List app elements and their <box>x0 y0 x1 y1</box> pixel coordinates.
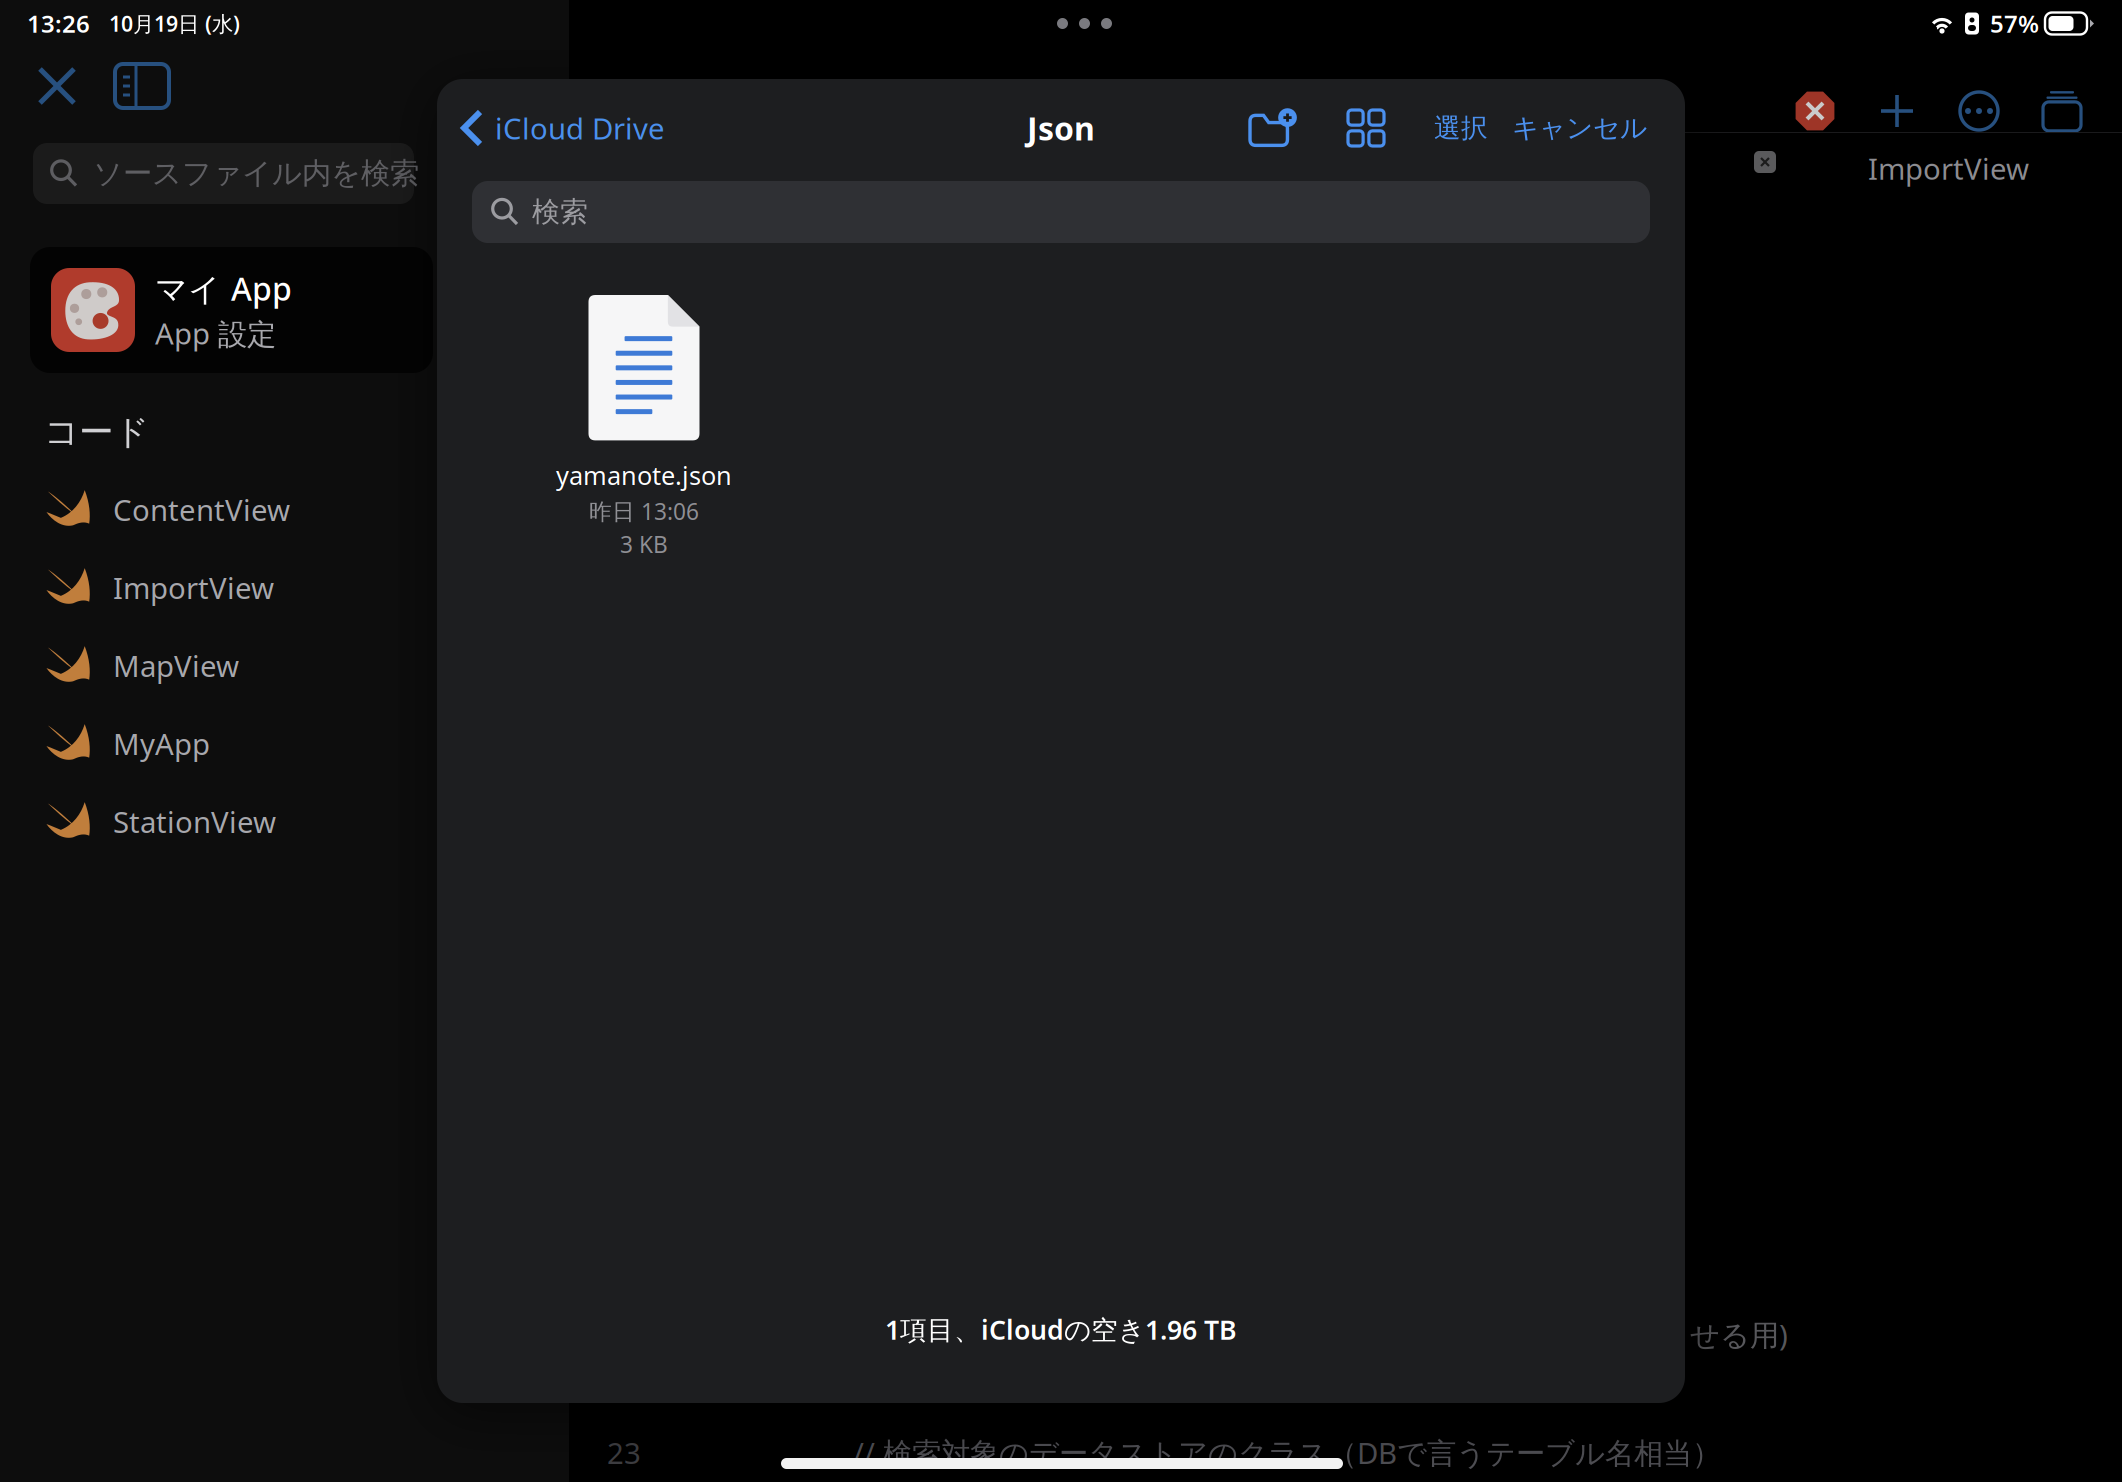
button[interactable]: yamanote.json <box>529 295 759 559</box>
staticText: Json <box>1027 107 1095 149</box>
button[interactable]: StationView <box>0 783 569 861</box>
button[interactable]: Change View <box>1312 96 1410 160</box>
button[interactable]: ImportView <box>0 549 569 627</box>
staticText: 10月19日 (水) <box>109 9 240 38</box>
staticText: 57% <box>1990 8 2039 39</box>
button[interactable]: New Folder <box>1236 94 1312 162</box>
button[interactable]: Toggle Sidebar <box>96 54 188 118</box>
button[interactable]: ソースファイル内を検索 <box>0 118 414 204</box>
button[interactable]: Stop <box>1774 90 1856 132</box>
staticText: 選択 <box>1434 112 1488 144</box>
staticText: コード <box>44 411 149 454</box>
button[interactable]: MyApp <box>0 705 569 783</box>
button[interactable]: Library <box>2020 90 2100 132</box>
button[interactable]: MapView <box>0 627 569 705</box>
staticText: ImportView <box>1868 149 2029 188</box>
staticText: iCloud Drive <box>495 108 665 147</box>
button[interactable]: 検索 <box>472 177 1650 243</box>
staticText: マイ App <box>155 267 292 310</box>
button[interactable]: Add <box>1856 94 1938 128</box>
button[interactable]: マイ App <box>0 204 433 373</box>
staticText: MyApp <box>113 724 210 763</box>
button[interactable]: ContentView <box>0 471 569 549</box>
button[interactable]: iCloud Drive <box>437 94 677 161</box>
staticText: キャンセル <box>1512 112 1647 144</box>
staticText: // 検索対象のデータストアのクラス（DBで言うテーブル名相当） <box>853 1433 1721 1472</box>
staticText: MapView <box>113 646 239 685</box>
staticText: App 設定 <box>155 314 276 353</box>
button[interactable]: キャンセル <box>1500 98 1685 158</box>
staticText: せる用) <box>1690 1315 1788 1354</box>
button[interactable]: Close <box>18 54 96 118</box>
button[interactable]: 選択 <box>1410 98 1500 158</box>
staticText: yamanote.json <box>556 458 732 492</box>
staticText: 3 KB <box>620 529 668 559</box>
staticText: ImportView <box>113 568 274 607</box>
staticText: StationView <box>113 802 276 841</box>
staticText: 検索 <box>532 195 588 229</box>
staticText: 23 <box>607 1433 641 1472</box>
staticText: 13:26 <box>27 8 90 39</box>
staticText: 1項目、iCloudの空き1.96 TB <box>885 1312 1237 1347</box>
staticText: 昨日 13:06 <box>589 496 699 526</box>
staticText: ソースファイル内を検索 <box>93 155 419 191</box>
button[interactable]: Close Tab <box>1744 141 1786 183</box>
button[interactable]: More <box>1938 92 2020 130</box>
staticText: ContentView <box>113 490 290 529</box>
